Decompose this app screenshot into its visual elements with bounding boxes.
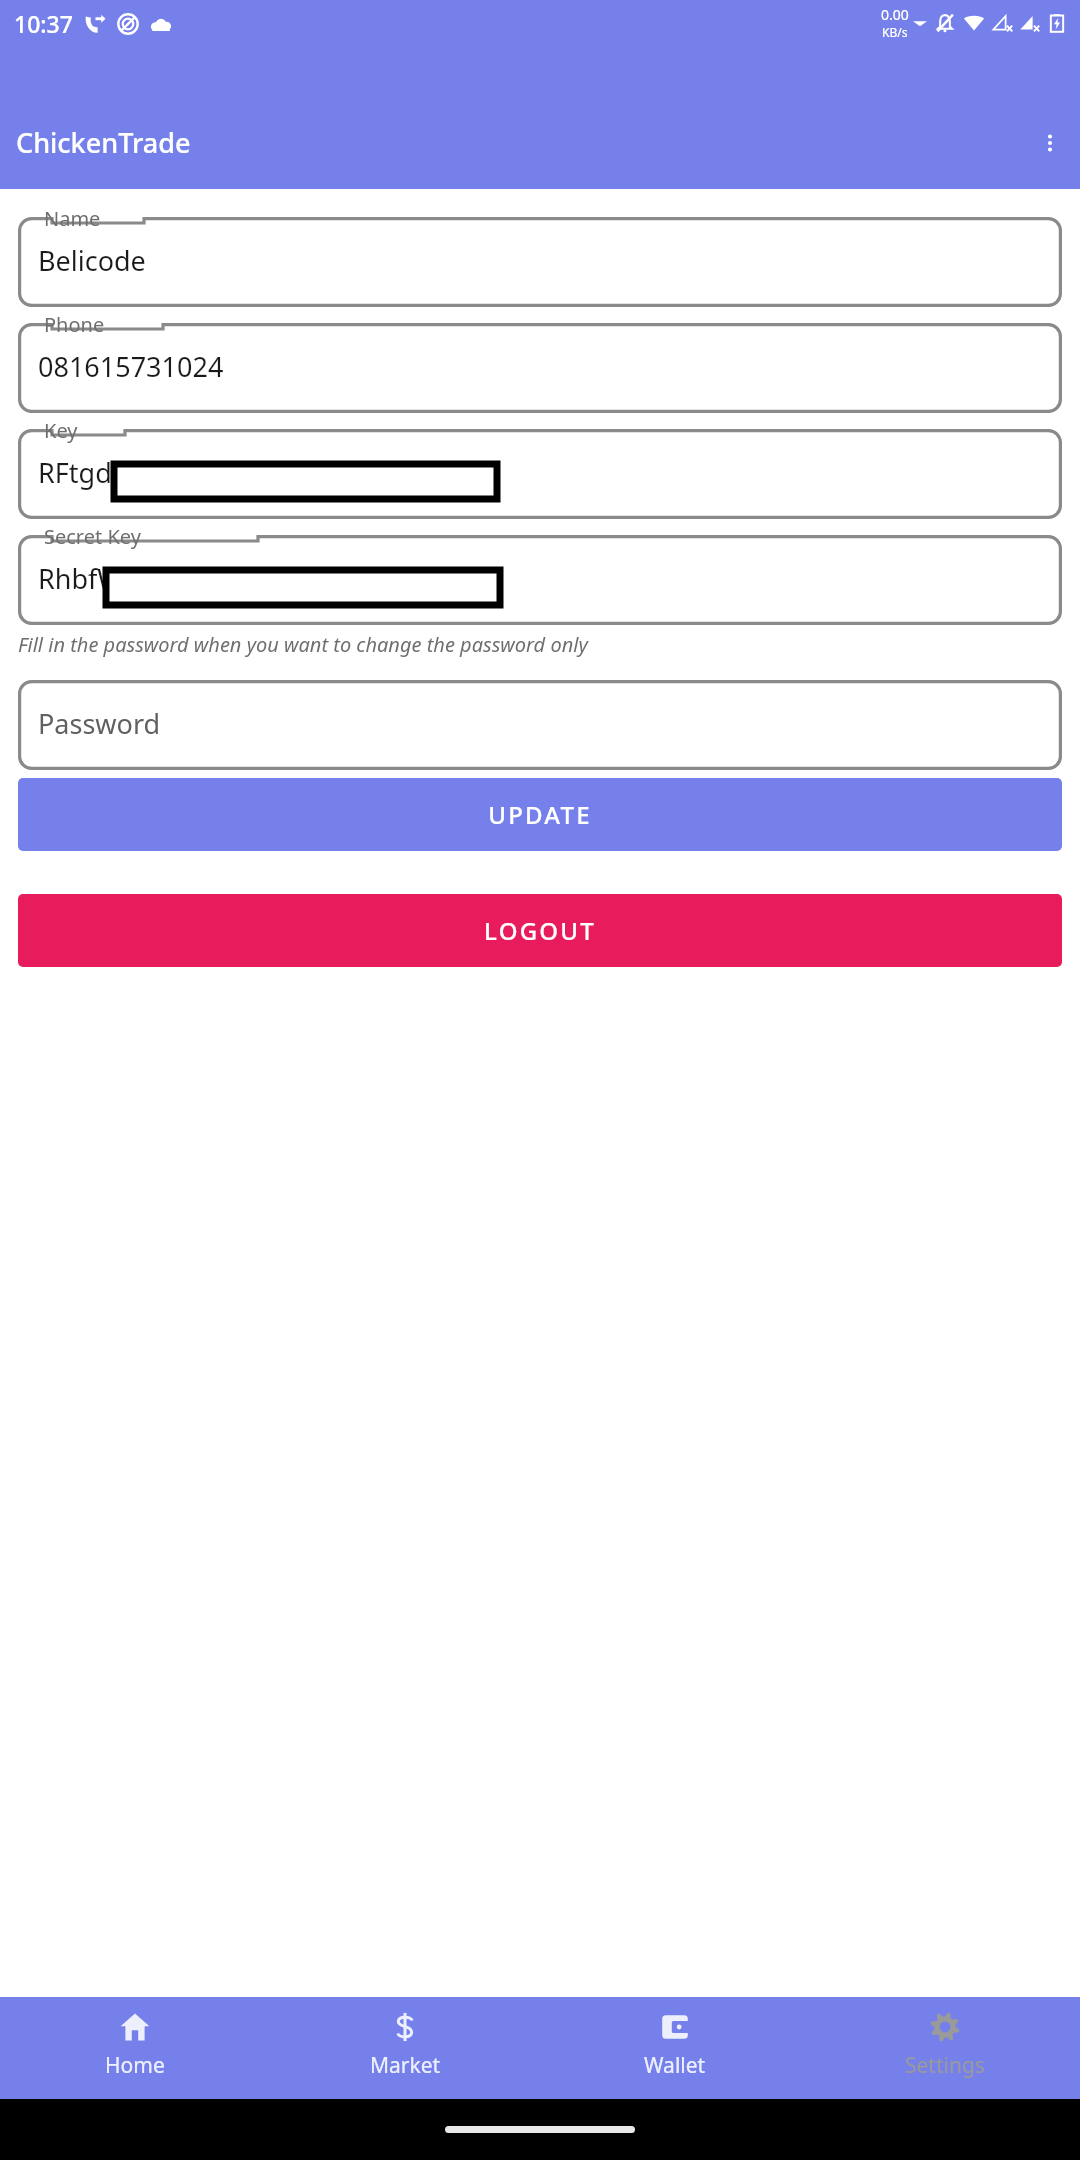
staticText: KB/s — [882, 24, 908, 40]
staticText: Settings — [905, 2051, 985, 2080]
staticText: Belicode — [38, 242, 146, 279]
staticText: Name — [44, 205, 101, 232]
button[interactable]: UPDATE — [18, 778, 1062, 851]
button[interactable]: Secret Key — [18, 523, 1062, 625]
button[interactable]: Name — [18, 205, 1062, 307]
staticText: RhbfWjQe — [38, 560, 166, 597]
staticText: Fill in the password when you want to ch… — [18, 631, 1062, 658]
button[interactable]: Home — [0, 1997, 270, 2080]
staticText: ChickenTrade — [16, 124, 191, 161]
staticText: Phone — [44, 311, 105, 338]
staticText: 081615731024 — [38, 348, 224, 385]
staticText: Password — [38, 705, 161, 742]
staticText: Secret Key — [44, 523, 141, 550]
button[interactable]: Password — [18, 668, 1062, 770]
button[interactable]: More options — [1026, 119, 1074, 167]
button[interactable]: Wallet — [540, 1997, 810, 2080]
staticText: Key — [44, 417, 78, 444]
staticText: LOGOUT — [484, 914, 596, 947]
button[interactable]: Phone — [18, 311, 1062, 413]
staticText: RFtgdaGwh — [38, 454, 185, 491]
staticText: Market — [370, 2051, 441, 2080]
staticText: Wallet — [644, 2051, 706, 2080]
staticText: UPDATE — [488, 798, 592, 831]
button[interactable]: Settings — [810, 1997, 1080, 2080]
staticText: Home — [105, 2051, 165, 2080]
button[interactable]: Market — [270, 1997, 540, 2080]
button[interactable]: LOGOUT — [18, 894, 1062, 967]
button[interactable]: Key — [18, 417, 1062, 519]
staticText: 0.00 — [881, 5, 909, 24]
staticText: 10:37 — [14, 8, 73, 39]
